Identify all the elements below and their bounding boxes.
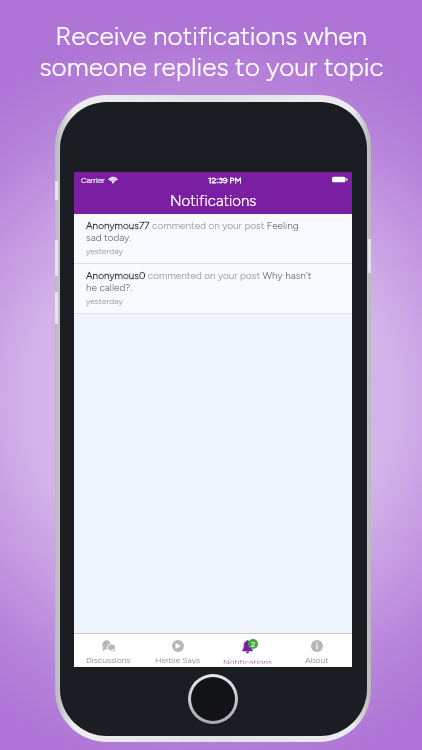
staticText: Receive notifications when (55, 20, 367, 51)
staticText: Notifications (170, 192, 257, 210)
staticText: Discussions (86, 655, 131, 664)
staticText: yesterday (86, 296, 123, 306)
staticText: Carrier (81, 175, 105, 185)
staticText: 12:39 PM (208, 175, 242, 185)
button[interactable]: Anonymous0 commented on your post Why ha… (74, 264, 352, 313)
staticText: Notifications (223, 657, 272, 664)
staticText: Herbie Says (155, 655, 201, 664)
button[interactable]: About (282, 634, 352, 667)
other: Discussions (102, 640, 116, 652)
button[interactable]: Anonymous77 commented on your post Feeli… (74, 214, 352, 263)
staticText: someone replies to your topic (39, 51, 384, 82)
other: About (311, 640, 323, 652)
staticText: Anonymous0 commented on your post Why ha… (86, 269, 316, 293)
button[interactable]: Herbie Says (143, 634, 212, 667)
other: Herbie Says (172, 640, 184, 652)
staticText: Anonymous77 commented on your post Feeli… (86, 219, 316, 243)
other: Notifications, 2 new (242, 640, 253, 654)
button[interactable]: Discussions (74, 634, 143, 667)
staticText: About (305, 655, 329, 664)
staticText: 2 (251, 639, 256, 649)
staticText: yesterday (86, 246, 123, 256)
button[interactable]: Notifications, 2 new (212, 634, 282, 667)
